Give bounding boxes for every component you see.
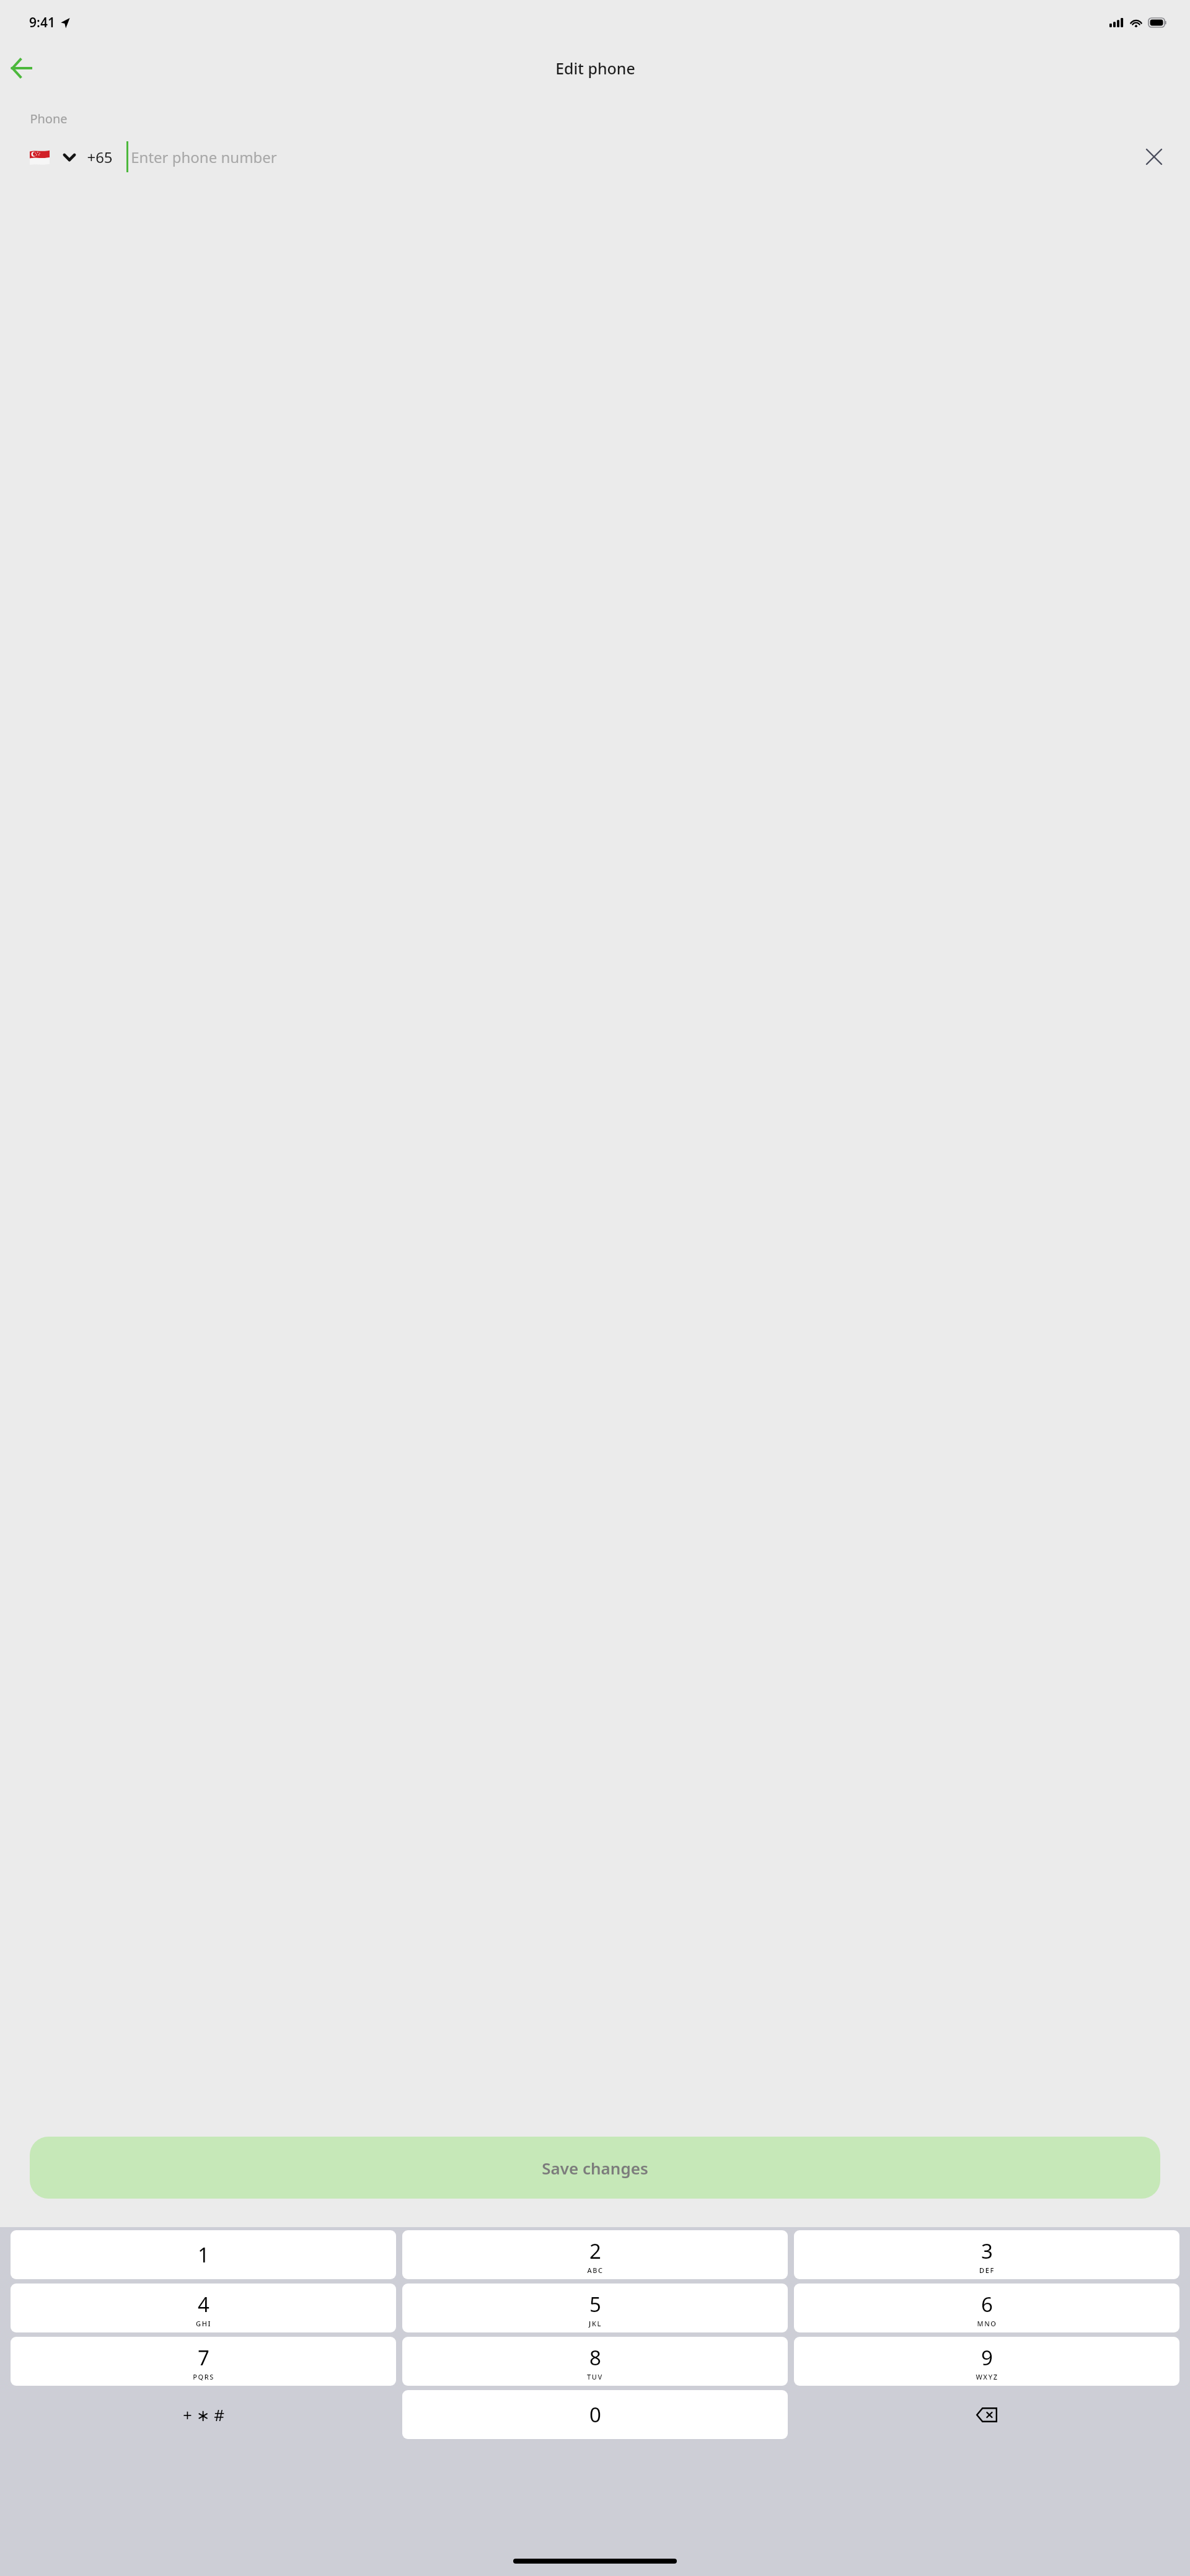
staticText: TUV	[587, 2372, 603, 2381]
staticText: 7	[198, 2344, 209, 2372]
staticText: 9	[981, 2344, 993, 2372]
button[interactable]: 3	[794, 2230, 1179, 2279]
button[interactable]: Symbols	[11, 2390, 396, 2439]
staticText: JKL	[589, 2319, 602, 2328]
staticText: 6	[981, 2290, 993, 2318]
staticText: 8	[589, 2344, 601, 2372]
button[interactable]: 1	[11, 2230, 396, 2279]
button[interactable]: Back	[4, 51, 38, 86]
staticText: Save changes	[542, 2157, 648, 2179]
staticText: 2	[589, 2237, 601, 2265]
button[interactable]: 0	[402, 2390, 788, 2439]
staticText: + ∗ #	[183, 2404, 224, 2425]
staticText: PQRS	[193, 2372, 214, 2381]
button[interactable]: 6	[794, 2284, 1179, 2332]
staticText: 9:41	[29, 14, 55, 32]
button[interactable]: 5	[402, 2284, 788, 2332]
staticText: Edit phone	[555, 58, 635, 79]
staticText: Enter phone number	[131, 147, 277, 167]
staticText: WXYZ	[976, 2372, 998, 2381]
staticText: MNO	[977, 2319, 997, 2328]
staticText: 5	[589, 2290, 601, 2318]
button[interactable]: 4	[11, 2284, 396, 2332]
button[interactable]: 9	[794, 2337, 1179, 2386]
staticText: Phone	[30, 110, 68, 127]
staticText: 3	[981, 2237, 993, 2265]
staticText: GHI	[196, 2319, 211, 2328]
staticText: 0	[589, 2401, 601, 2429]
button[interactable]: 8	[402, 2337, 788, 2386]
staticText: DEF	[979, 2266, 995, 2275]
button[interactable]: 7	[11, 2337, 396, 2386]
staticText: +65	[87, 147, 113, 167]
staticText: ABC	[587, 2266, 604, 2275]
button[interactable]: 2	[402, 2230, 788, 2279]
button[interactable]: Save changes	[30, 2137, 1160, 2199]
button[interactable]: Clear	[1138, 141, 1170, 173]
button[interactable]: Backspace	[794, 2390, 1179, 2439]
staticText: 1	[198, 2241, 209, 2269]
button[interactable]: +65	[25, 144, 118, 170]
staticText: 4	[198, 2290, 209, 2318]
